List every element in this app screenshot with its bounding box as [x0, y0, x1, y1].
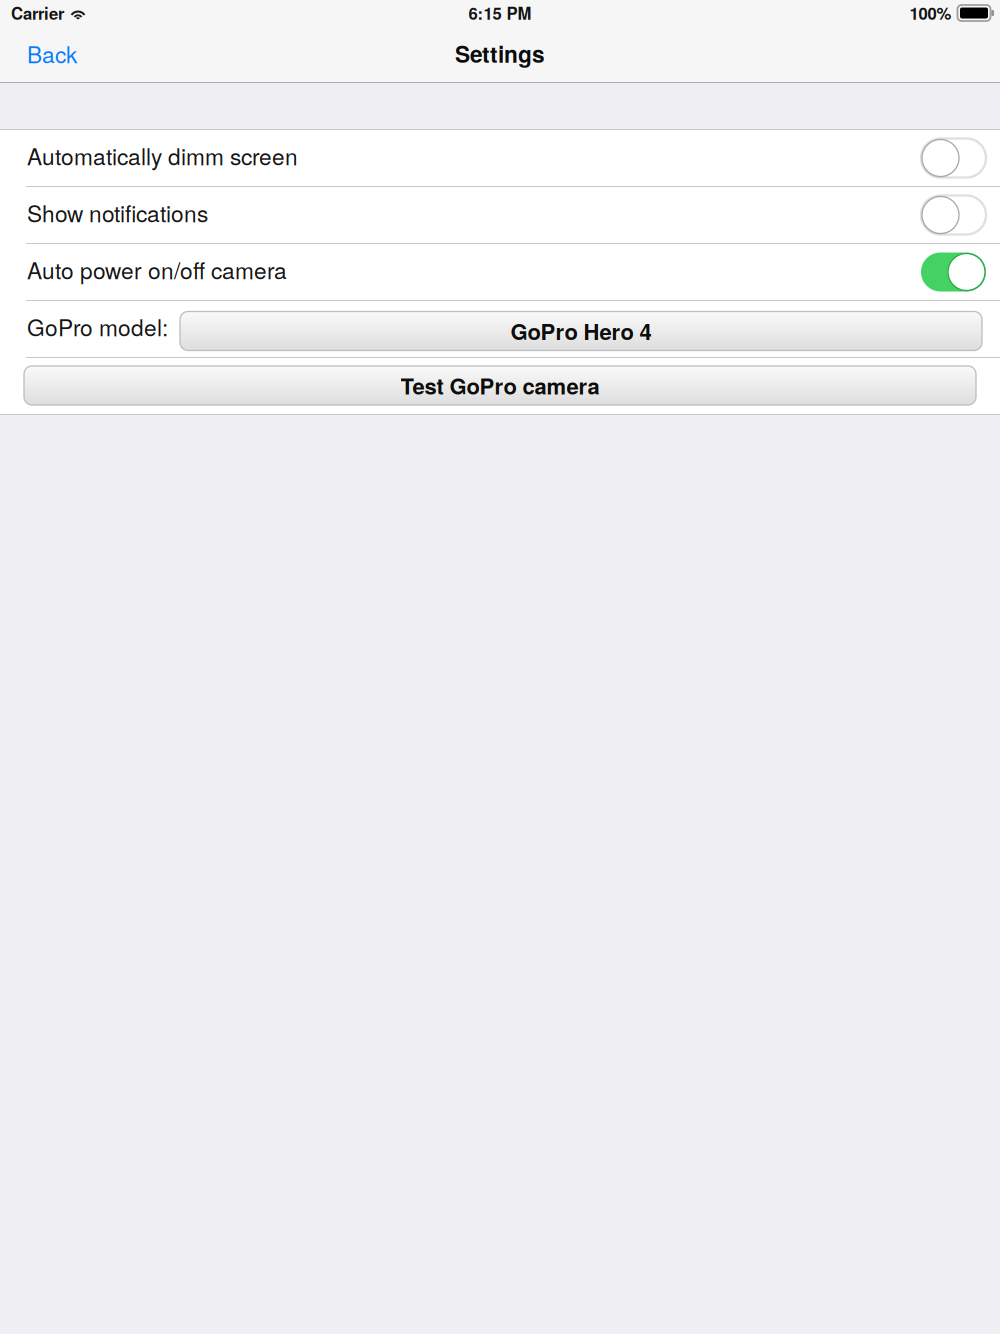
- button[interactable]: Test GoPro camera: [24, 366, 976, 405]
- staticText: 100%: [909, 1, 951, 25]
- button[interactable]: Auto power on/off camera: [0, 244, 1000, 300]
- staticText: Carrier: [11, 1, 64, 25]
- button[interactable]: Automatically dimm screen: [0, 130, 1000, 186]
- staticText: 6:15 PM: [468, 1, 531, 25]
- staticText: GoPro model:: [27, 310, 168, 343]
- staticText: Back: [27, 37, 77, 70]
- button[interactable]: Back: [0, 26, 93, 83]
- staticText: Automatically dimm screen: [27, 139, 298, 172]
- staticText: Test GoPro camera: [400, 370, 599, 401]
- staticText: GoPro Hero 4: [510, 315, 651, 347]
- button[interactable]: GoPro Hero 4: [180, 311, 982, 350]
- staticText: Settings: [455, 37, 545, 70]
- staticText: Auto power on/off camera: [27, 253, 287, 286]
- staticText: Show notifications: [27, 196, 208, 229]
- button[interactable]: Show notifications: [0, 187, 1000, 243]
